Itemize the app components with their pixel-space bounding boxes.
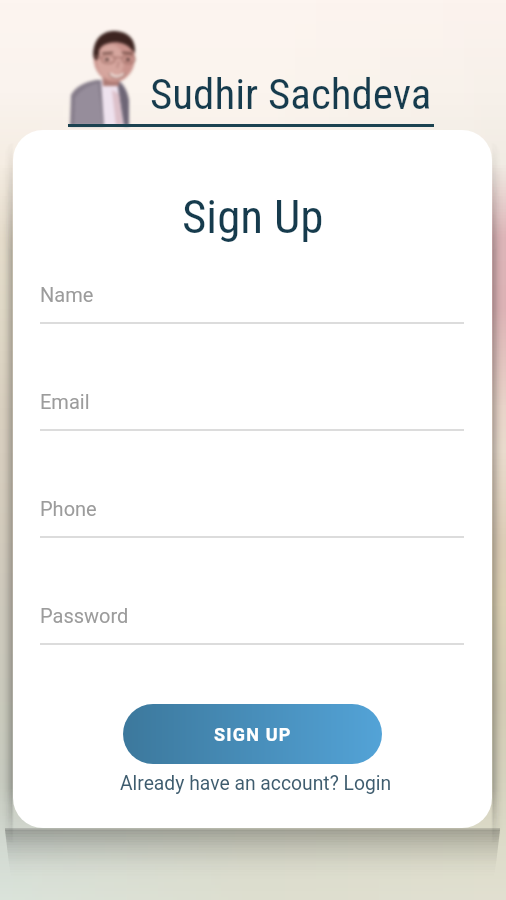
- button[interactable]: Email: [40, 390, 464, 431]
- staticText: Phone: [40, 497, 97, 520]
- button[interactable]: SIGN UP: [123, 704, 382, 764]
- staticText: Sign Up: [182, 189, 324, 244]
- staticText: Sudhir Sachdeva: [150, 69, 432, 119]
- staticText: Email: [40, 390, 90, 413]
- staticText: Already have an account? Login: [120, 772, 392, 795]
- button[interactable]: Phone: [40, 497, 464, 538]
- button[interactable]: Already have an account? Login: [116, 768, 396, 799]
- staticText: SIGN UP: [214, 724, 292, 745]
- staticText: Name: [40, 283, 94, 306]
- button[interactable]: Name: [40, 283, 464, 324]
- staticText: Password: [40, 604, 129, 627]
- button[interactable]: Password: [40, 604, 464, 645]
